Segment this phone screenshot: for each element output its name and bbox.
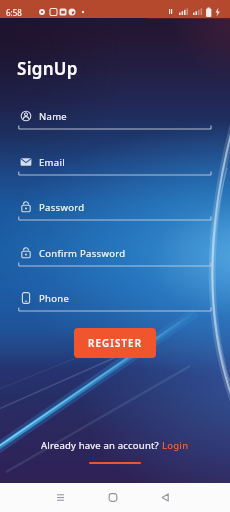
button[interactable] xyxy=(92,483,134,512)
staticText: Name xyxy=(39,110,67,123)
staticText: 6:58 xyxy=(6,7,22,18)
button[interactable]: Password xyxy=(18,193,212,224)
staticText: Email xyxy=(39,156,65,169)
staticText: Phone xyxy=(39,292,70,305)
staticText: REGISTER xyxy=(88,337,143,350)
staticText: SignUp xyxy=(17,57,78,80)
button[interactable]: REGISTER xyxy=(74,328,156,358)
staticText: Confirm Password xyxy=(39,247,126,260)
button[interactable]: Login xyxy=(162,439,189,452)
staticText: Password xyxy=(39,201,85,214)
staticText: Already have an account? xyxy=(41,439,162,452)
button[interactable] xyxy=(40,483,82,512)
button[interactable] xyxy=(144,483,186,512)
button[interactable]: Name xyxy=(18,102,212,133)
button[interactable]: Email xyxy=(18,148,212,179)
button[interactable]: Confirm Password xyxy=(18,239,212,270)
button[interactable]: Phone xyxy=(18,284,212,315)
